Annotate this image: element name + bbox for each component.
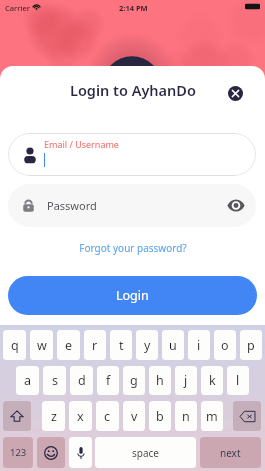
staticText: r — [92, 337, 98, 354]
staticText: g — [130, 372, 138, 389]
staticText: Email / Username — [44, 138, 119, 150]
staticText: 2:14 PM — [119, 3, 148, 13]
button[interactable]: g — [123, 366, 145, 395]
button[interactable]: i — [188, 330, 210, 360]
button[interactable]: n — [175, 401, 197, 431]
staticText: space — [132, 446, 159, 460]
button[interactable]: q — [3, 330, 26, 360]
staticText: s — [52, 372, 58, 389]
button[interactable]: Dictation — [69, 437, 92, 468]
button[interactable]: c — [96, 401, 119, 431]
button[interactable]: x — [69, 401, 92, 431]
staticText: y — [144, 337, 151, 354]
button[interactable]: Password — [8, 184, 256, 227]
staticText: j — [184, 372, 188, 389]
button[interactable]: a — [16, 366, 39, 395]
button[interactable]: Emoji — [37, 437, 65, 468]
button[interactable]: v — [123, 401, 145, 431]
staticText: l — [236, 372, 240, 389]
button[interactable]: Shift — [3, 401, 31, 431]
button[interactable]: Backspace — [233, 401, 261, 431]
staticText: k — [209, 372, 216, 389]
button[interactable]: k — [201, 366, 223, 395]
staticText: f — [106, 372, 111, 389]
button[interactable]: p — [240, 330, 262, 360]
button[interactable]: h — [149, 366, 171, 395]
staticText: u — [169, 337, 177, 354]
staticText: b — [156, 408, 164, 425]
button[interactable]: l — [227, 366, 249, 395]
staticText: i — [197, 337, 201, 354]
button[interactable]: next — [200, 437, 261, 468]
button[interactable]: f — [97, 366, 119, 395]
staticText: 123 — [10, 446, 27, 459]
staticText: x — [77, 408, 84, 425]
button[interactable]: j — [175, 366, 197, 395]
button[interactable]: Close — [228, 86, 243, 101]
staticText: d — [78, 372, 86, 389]
staticText: c — [104, 408, 111, 425]
button[interactable]: Forgot your password? — [0, 240, 265, 256]
button[interactable]: w — [30, 330, 53, 360]
staticText: o — [221, 337, 229, 354]
staticText: h — [156, 372, 164, 389]
staticText: Carrier — [5, 3, 30, 13]
staticText: Forgot your password? — [79, 241, 187, 255]
button[interactable]: space — [95, 437, 196, 468]
button[interactable]: b — [149, 401, 171, 431]
button[interactable]: d — [70, 366, 93, 395]
staticText: Login to AyhanDo — [70, 80, 196, 100]
button[interactable]: o — [214, 330, 236, 360]
button[interactable]: s — [43, 366, 66, 395]
staticText: p — [247, 337, 255, 354]
button[interactable]: u — [162, 330, 184, 360]
staticText: z — [51, 408, 57, 425]
button[interactable]: Login — [8, 276, 257, 315]
staticText: a — [24, 372, 32, 389]
button[interactable]: e — [57, 330, 80, 360]
button[interactable]: t — [110, 330, 132, 360]
button[interactable]: 123 — [3, 437, 33, 468]
button[interactable]: z — [42, 401, 65, 431]
button[interactable]: Show password — [227, 199, 245, 212]
button[interactable]: m — [201, 401, 223, 431]
button[interactable]: r — [84, 330, 106, 360]
button[interactable]: Email / Username — [8, 133, 256, 176]
staticText: q — [11, 337, 19, 354]
staticText: e — [65, 337, 73, 354]
staticText: Password — [47, 198, 97, 213]
staticText: v — [131, 408, 138, 425]
staticText: Login — [116, 287, 149, 304]
staticText: m — [206, 408, 218, 425]
button[interactable]: y — [136, 330, 158, 360]
staticText: w — [37, 337, 47, 354]
staticText: n — [182, 408, 190, 425]
staticText: next — [220, 446, 241, 460]
staticText: t — [119, 337, 124, 354]
